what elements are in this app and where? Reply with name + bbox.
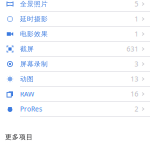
button[interactable]: 动图 [0, 72, 150, 87]
button[interactable]: RAW [0, 87, 150, 102]
button[interactable]: ProRes [0, 102, 150, 117]
button[interactable]: 屏幕录制 [0, 57, 150, 72]
staticText: 631 [126, 45, 138, 53]
button[interactable]: 延时摄影 [0, 12, 150, 27]
staticText: 2 [134, 105, 138, 113]
staticText: 更多项目 [5, 133, 33, 141]
staticText: 3 [134, 60, 138, 68]
staticText: 动图 [20, 75, 34, 83]
staticText: 5 [134, 0, 138, 8]
button[interactable]: 截屏 [0, 42, 150, 57]
staticText: 电影效果 [20, 30, 48, 38]
staticText: 延时摄影 [20, 15, 48, 23]
staticText: 16 [130, 90, 138, 98]
button[interactable]: 全景照片 [0, 0, 150, 12]
staticText: 截屏 [20, 45, 34, 53]
staticText: 屏幕录制 [20, 60, 48, 68]
staticText: ProRes [20, 105, 42, 113]
staticText: 1 [134, 30, 138, 38]
staticText: 全景照片 [20, 0, 48, 8]
staticText: 1 [134, 15, 138, 23]
staticText: RAW [20, 90, 34, 98]
button[interactable]: 电影效果 [0, 27, 150, 42]
staticText: 13 [130, 75, 138, 83]
